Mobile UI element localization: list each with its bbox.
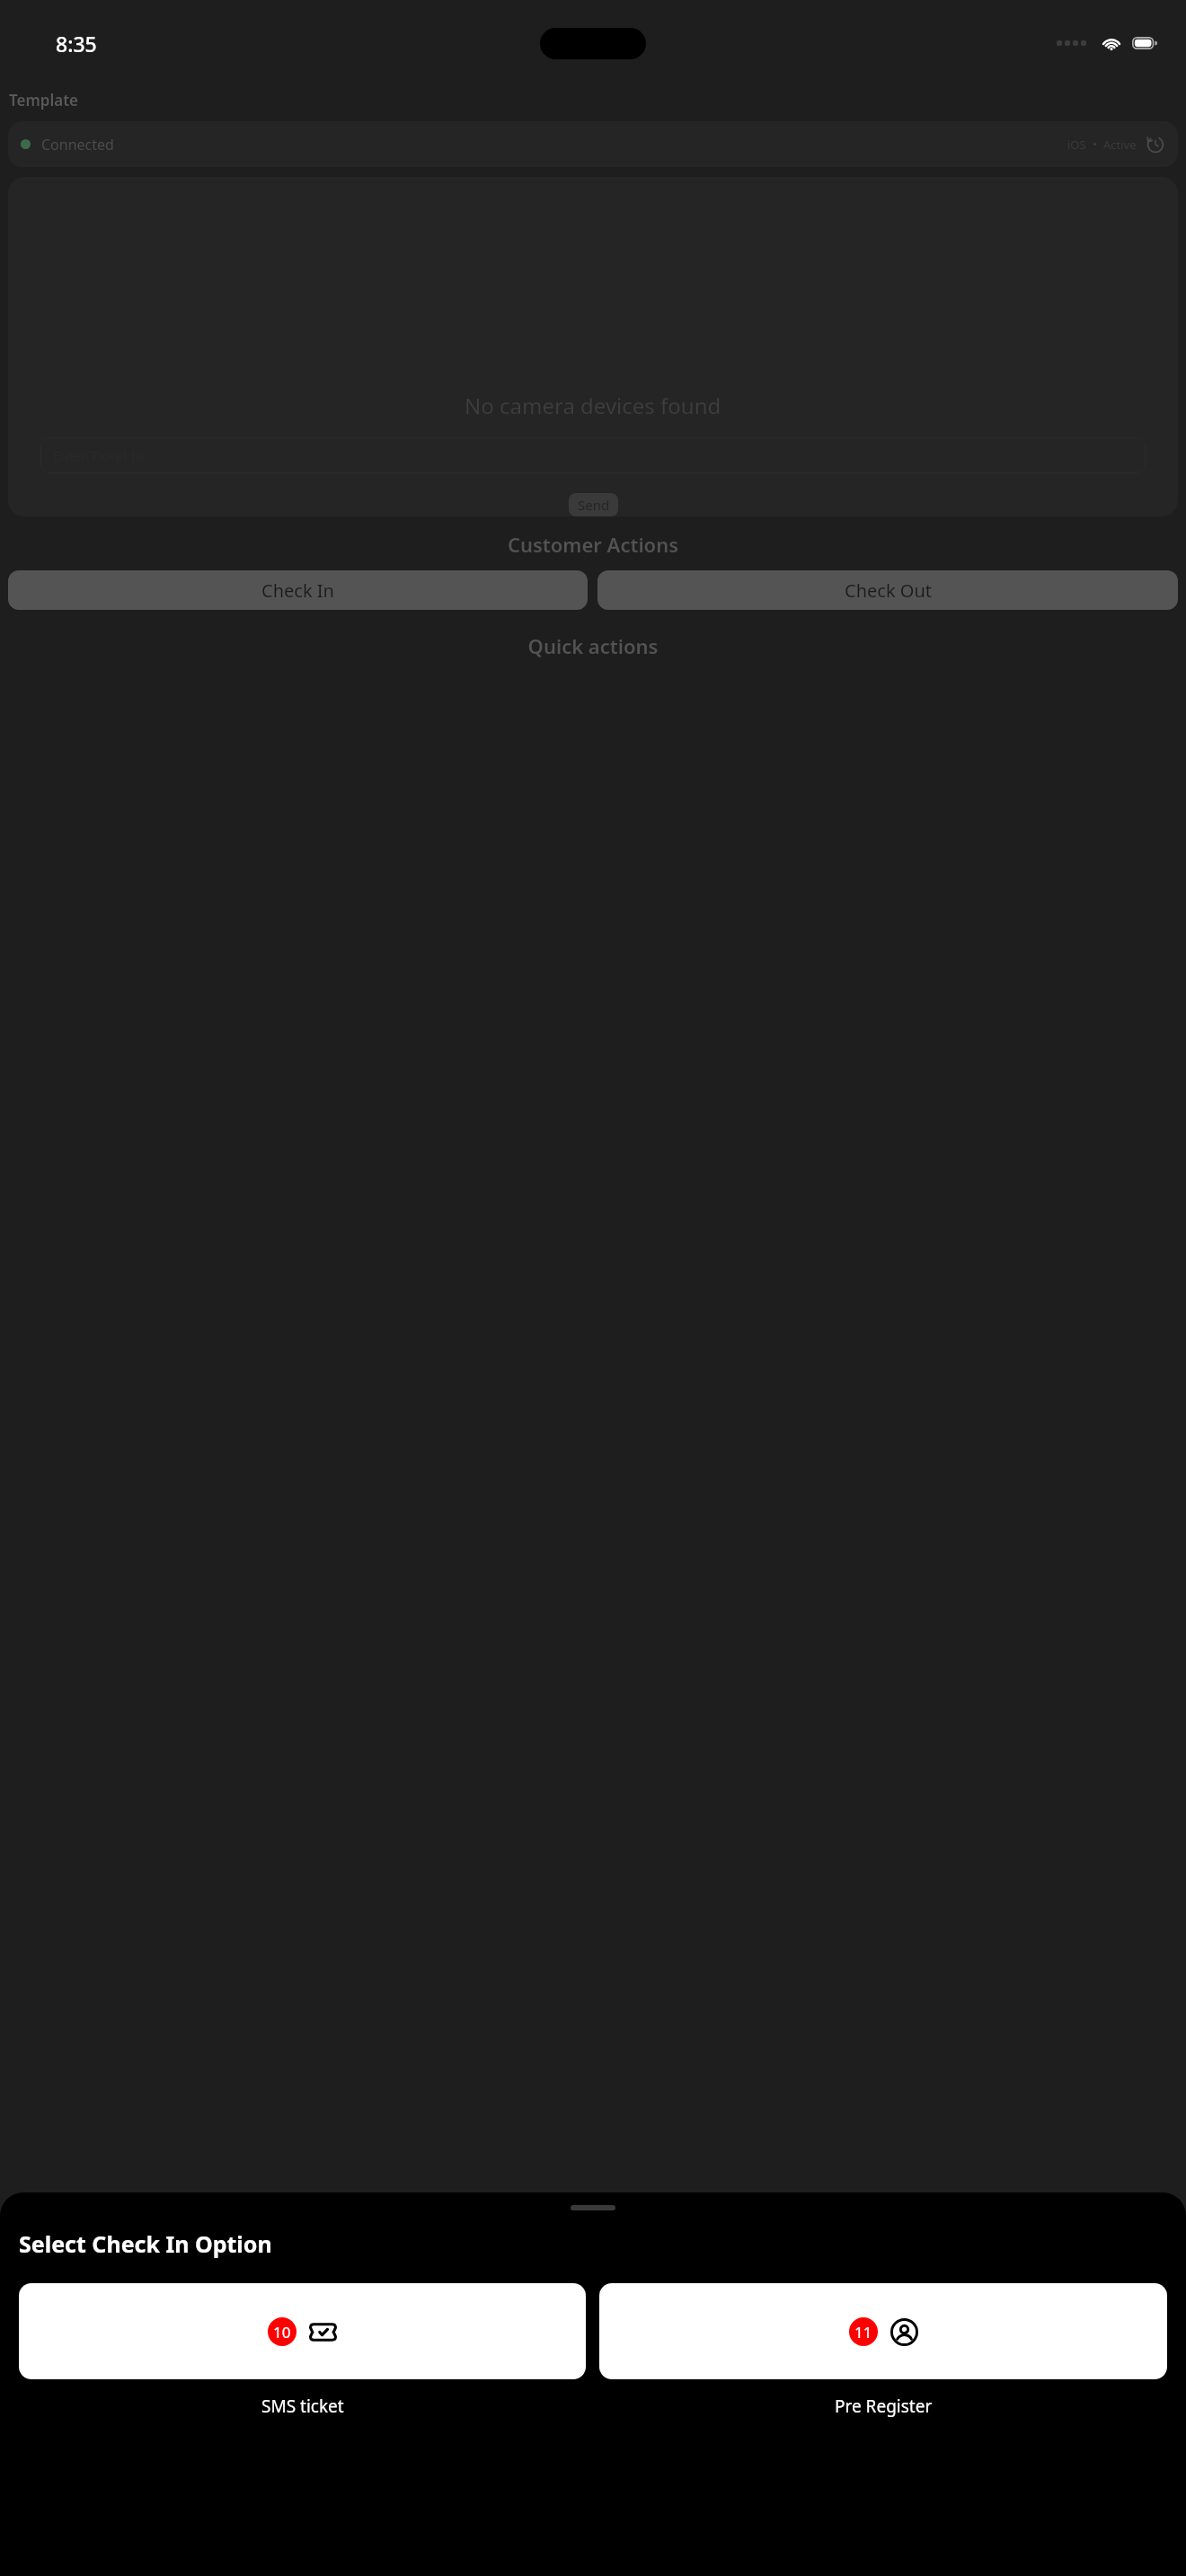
staticText: Select Check In Option	[19, 2228, 272, 2259]
staticText: Customer Actions	[0, 531, 1186, 558]
button[interactable]: 11	[599, 2283, 1167, 2418]
staticText: Pre Register	[835, 2395, 933, 2418]
button[interactable]: History	[1146, 135, 1165, 154]
staticText: 11	[854, 2322, 872, 2342]
button[interactable]: Check In	[8, 570, 588, 610]
staticText: 10	[273, 2322, 291, 2342]
staticText: Check In	[261, 578, 334, 603]
staticText: Active	[1103, 137, 1137, 153]
staticText: Send	[578, 496, 610, 514]
button[interactable]: Send	[569, 493, 618, 516]
button[interactable]: Connected	[8, 121, 1178, 167]
staticText: Template	[9, 90, 78, 110]
button[interactable]: Check Out	[597, 570, 1178, 610]
staticText: Check Out	[845, 578, 932, 603]
staticText: Quick actions	[0, 632, 1186, 659]
staticText: 8:35	[56, 30, 97, 57]
staticText: iOS	[1067, 137, 1086, 153]
staticText: No camera devices found	[465, 391, 721, 420]
staticText: Connected	[41, 135, 114, 154]
staticText: SMS ticket	[261, 2395, 344, 2418]
button[interactable]: 10	[19, 2283, 586, 2418]
